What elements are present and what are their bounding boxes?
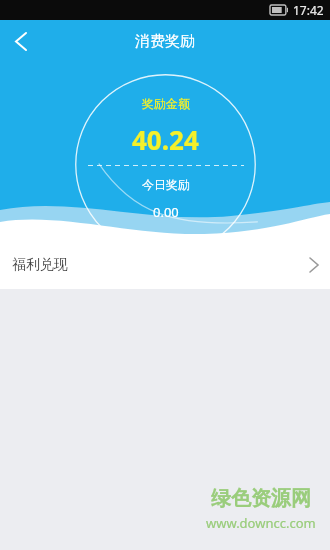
staticText: 40.24 <box>132 122 199 157</box>
button[interactable]: Back <box>0 20 42 62</box>
staticText: www.downcc.com <box>206 514 316 532</box>
staticText: 奖励金额 <box>142 96 190 111</box>
staticText: 福利兑现 <box>12 256 68 274</box>
staticText: 今日奖励 <box>142 177 190 192</box>
staticText: 绿色资源网 <box>211 486 311 511</box>
staticText: 0.00 <box>153 203 179 221</box>
staticText: 消费奖励 <box>135 32 195 51</box>
staticText: 17:42 <box>293 2 324 18</box>
button[interactable]: 福利兑现 <box>0 240 330 289</box>
